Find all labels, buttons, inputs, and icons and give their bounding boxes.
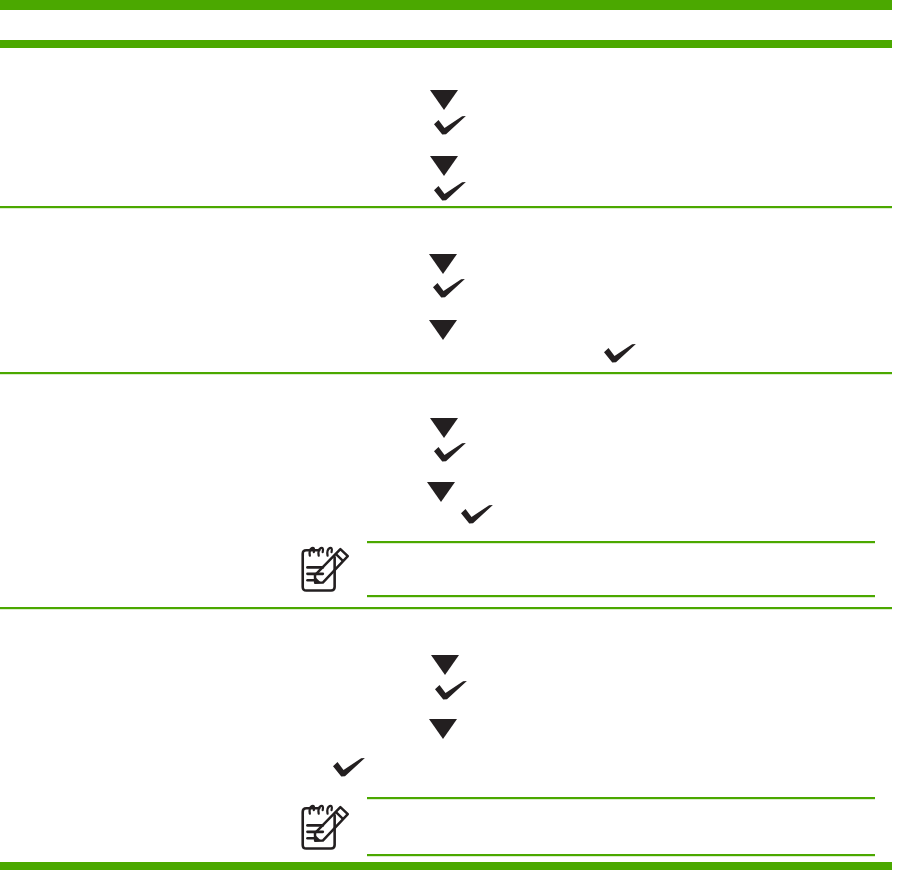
button[interactable]: Printer setup instruction page (0, 0, 901, 870)
